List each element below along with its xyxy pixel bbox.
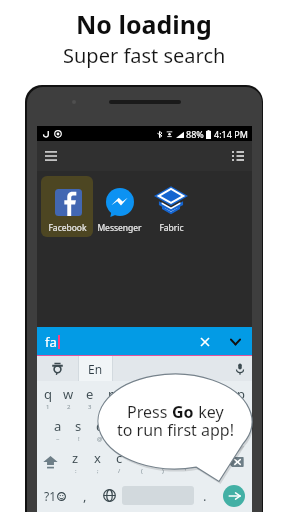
staticText: v xyxy=(138,449,145,467)
button[interactable]: l xyxy=(220,414,242,446)
staticText: @ xyxy=(97,435,103,443)
button[interactable]: . xyxy=(194,478,216,512)
button[interactable]: q xyxy=(37,381,58,414)
button[interactable]: x xyxy=(86,446,108,478)
staticText: x xyxy=(94,449,101,467)
button[interactable]: Menu xyxy=(41,146,61,166)
button[interactable]: c xyxy=(108,446,130,478)
staticText: ?1 xyxy=(44,488,57,504)
staticText: h xyxy=(161,417,170,435)
staticText: w xyxy=(63,385,74,403)
staticText: p xyxy=(237,385,245,403)
button[interactable]: u xyxy=(164,381,186,414)
staticText: ; xyxy=(97,467,99,475)
button[interactable]: e xyxy=(79,381,100,414)
staticText: : xyxy=(75,467,77,475)
staticText: 2 xyxy=(67,403,71,411)
button[interactable]: r xyxy=(100,381,121,414)
button[interactable]: Expand xyxy=(224,331,246,353)
staticText: Super fast search xyxy=(63,42,226,69)
staticText: ‘ xyxy=(185,467,187,475)
staticText: z xyxy=(72,449,79,467)
staticText: 88% xyxy=(186,128,204,140)
button[interactable]: Symbols xyxy=(37,478,72,512)
button[interactable]: p xyxy=(230,381,252,414)
button[interactable]: j xyxy=(176,414,198,446)
staticText: ! xyxy=(78,435,80,443)
button[interactable]: Fabric xyxy=(145,176,197,237)
staticText: j xyxy=(186,417,190,435)
staticText: - xyxy=(230,435,232,443)
staticText: 4:14 PM xyxy=(214,128,248,140)
button[interactable]: Shift xyxy=(37,446,64,478)
button[interactable]: En xyxy=(79,356,112,381)
staticText: # xyxy=(120,435,124,443)
button[interactable]: w xyxy=(58,381,79,414)
button[interactable]: Go xyxy=(216,478,252,512)
button[interactable]: i xyxy=(186,381,208,414)
button[interactable]: t xyxy=(121,381,142,414)
staticText: c xyxy=(116,449,123,467)
staticText: 5 xyxy=(130,403,134,411)
staticText: Facebook xyxy=(48,222,87,234)
staticText: Messenger xyxy=(97,222,142,234)
button[interactable]: Clear query xyxy=(194,331,216,353)
staticText: ) xyxy=(162,467,164,475)
staticText: / xyxy=(118,467,121,475)
staticText: a xyxy=(54,417,62,435)
staticText: d xyxy=(96,417,104,435)
staticText: s xyxy=(75,417,82,435)
button[interactable]: s xyxy=(68,414,89,446)
button[interactable]: m xyxy=(196,446,218,478)
staticText: to run first app! xyxy=(117,419,234,441)
button[interactable]: Keyboard settings xyxy=(37,356,78,381)
staticText: No loading xyxy=(76,7,212,41)
staticText: 7 xyxy=(174,403,178,411)
button[interactable]: k xyxy=(198,414,220,446)
staticText: key xyxy=(194,401,224,423)
staticText: ( xyxy=(141,467,143,475)
staticText: 6 xyxy=(152,403,156,411)
button[interactable]: Facebook xyxy=(41,176,93,237)
staticText: ~ xyxy=(56,435,60,443)
button[interactable]: a xyxy=(47,414,68,446)
staticText: * xyxy=(208,435,212,443)
staticText: e xyxy=(86,385,94,403)
staticText: Fabric xyxy=(159,222,184,234)
button[interactable]: Backspace xyxy=(218,446,252,478)
button[interactable]: List view xyxy=(228,146,248,166)
button[interactable]: y xyxy=(142,381,164,414)
button[interactable]: z xyxy=(64,446,86,478)
button[interactable]: f xyxy=(110,414,132,446)
button[interactable]: h xyxy=(154,414,176,446)
button[interactable]: d xyxy=(89,414,110,446)
button[interactable]: Voice input xyxy=(228,356,252,381)
staticText: En xyxy=(88,361,103,377)
staticText: 9 xyxy=(217,403,221,411)
button[interactable]: v xyxy=(130,446,152,478)
button[interactable]: , xyxy=(72,478,97,512)
button[interactable]: Change language xyxy=(97,478,122,512)
button[interactable]: o xyxy=(208,381,230,414)
staticText: " xyxy=(206,467,209,475)
staticText: fa xyxy=(45,333,57,351)
button[interactable]: Messenger xyxy=(93,176,145,237)
staticText: . xyxy=(203,487,207,505)
button[interactable]: b xyxy=(152,446,174,478)
button[interactable]: n xyxy=(174,446,196,478)
staticText: Go xyxy=(172,401,194,423)
staticText: Press xyxy=(127,401,172,423)
staticText: l xyxy=(229,417,233,435)
button[interactable]: g xyxy=(132,414,154,446)
staticText: r xyxy=(108,385,114,403)
